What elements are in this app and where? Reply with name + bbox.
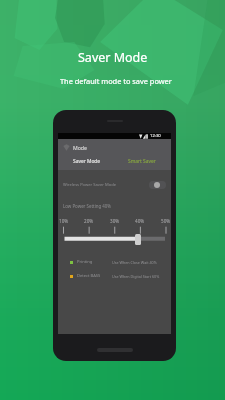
staticText: Detect BASS <box>77 273 101 279</box>
button[interactable]: Battery saver icon <box>58 139 171 155</box>
staticText: Saver Mode <box>78 49 148 66</box>
staticText: Use When Close Wait 40% <box>112 260 157 265</box>
staticText: Use When Digital Start 60% <box>112 274 160 279</box>
staticText: The default mode to save power <box>60 76 172 86</box>
button[interactable]: Battery saver icon <box>63 144 70 151</box>
button[interactable] <box>149 181 166 189</box>
staticText: Saver Mode <box>73 158 101 165</box>
staticText: 10% <box>59 218 69 224</box>
staticText: Smart Saver <box>128 158 156 165</box>
staticText: Wireless Power Saver Mode <box>63 182 116 188</box>
staticText: 40% <box>135 218 145 224</box>
staticText: 30% <box>110 218 120 224</box>
staticText: Printing <box>77 259 93 265</box>
staticText: 20% <box>84 218 94 224</box>
staticText: Low Power Setting 40% <box>63 203 111 209</box>
staticText: 50% <box>161 218 171 224</box>
button[interactable]: Wireless Power Saver Mode <box>58 178 171 191</box>
staticText: 12:30 <box>150 133 161 139</box>
button[interactable]: Smart Saver <box>124 153 159 170</box>
button[interactable]: Saver Mode <box>69 153 104 170</box>
staticText: Mode <box>73 144 87 151</box>
button[interactable] <box>135 234 141 245</box>
button[interactable]: Detect BASS <box>58 271 171 281</box>
button[interactable]: Printing <box>58 257 171 267</box>
